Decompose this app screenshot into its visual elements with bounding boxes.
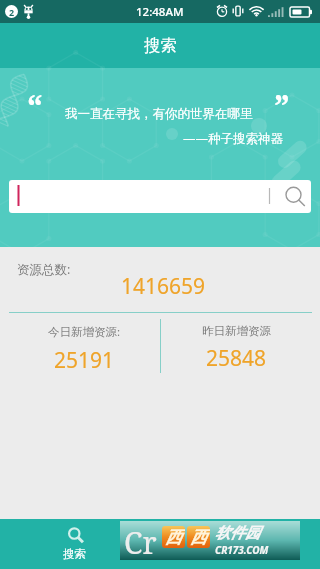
staticText: 25848 xyxy=(206,344,267,373)
button[interactable]: 今日新增资源: xyxy=(9,313,160,379)
staticText: 资源总数: xyxy=(17,261,71,278)
button[interactable]: 搜索 xyxy=(21,519,128,569)
staticText: 搜索 xyxy=(144,35,177,56)
staticText: 今日新增资源: xyxy=(48,324,121,340)
staticText: 1416659 xyxy=(121,272,206,301)
button[interactable]: 昨日新增资源 xyxy=(161,313,312,379)
staticText: 软件园 xyxy=(215,524,260,543)
staticText: ” xyxy=(274,84,290,128)
staticText: 西 xyxy=(190,527,207,548)
staticText: “ xyxy=(27,84,43,128)
staticText: CR173.COM xyxy=(215,543,269,557)
staticText: Cr xyxy=(124,522,157,561)
staticText: 2 xyxy=(9,6,15,18)
staticText: 西 xyxy=(165,527,182,548)
staticText: 搜索 xyxy=(63,547,86,561)
staticText: 我一直在寻找，有你的世界在哪里 xyxy=(65,106,253,122)
staticText: 25191 xyxy=(54,346,115,375)
staticText: ——种子搜索神器 xyxy=(183,130,284,147)
button[interactable]: 搜索框 xyxy=(9,180,311,213)
staticText: 昨日新增资源 xyxy=(202,324,271,338)
staticText: 12:48AM xyxy=(136,4,184,20)
